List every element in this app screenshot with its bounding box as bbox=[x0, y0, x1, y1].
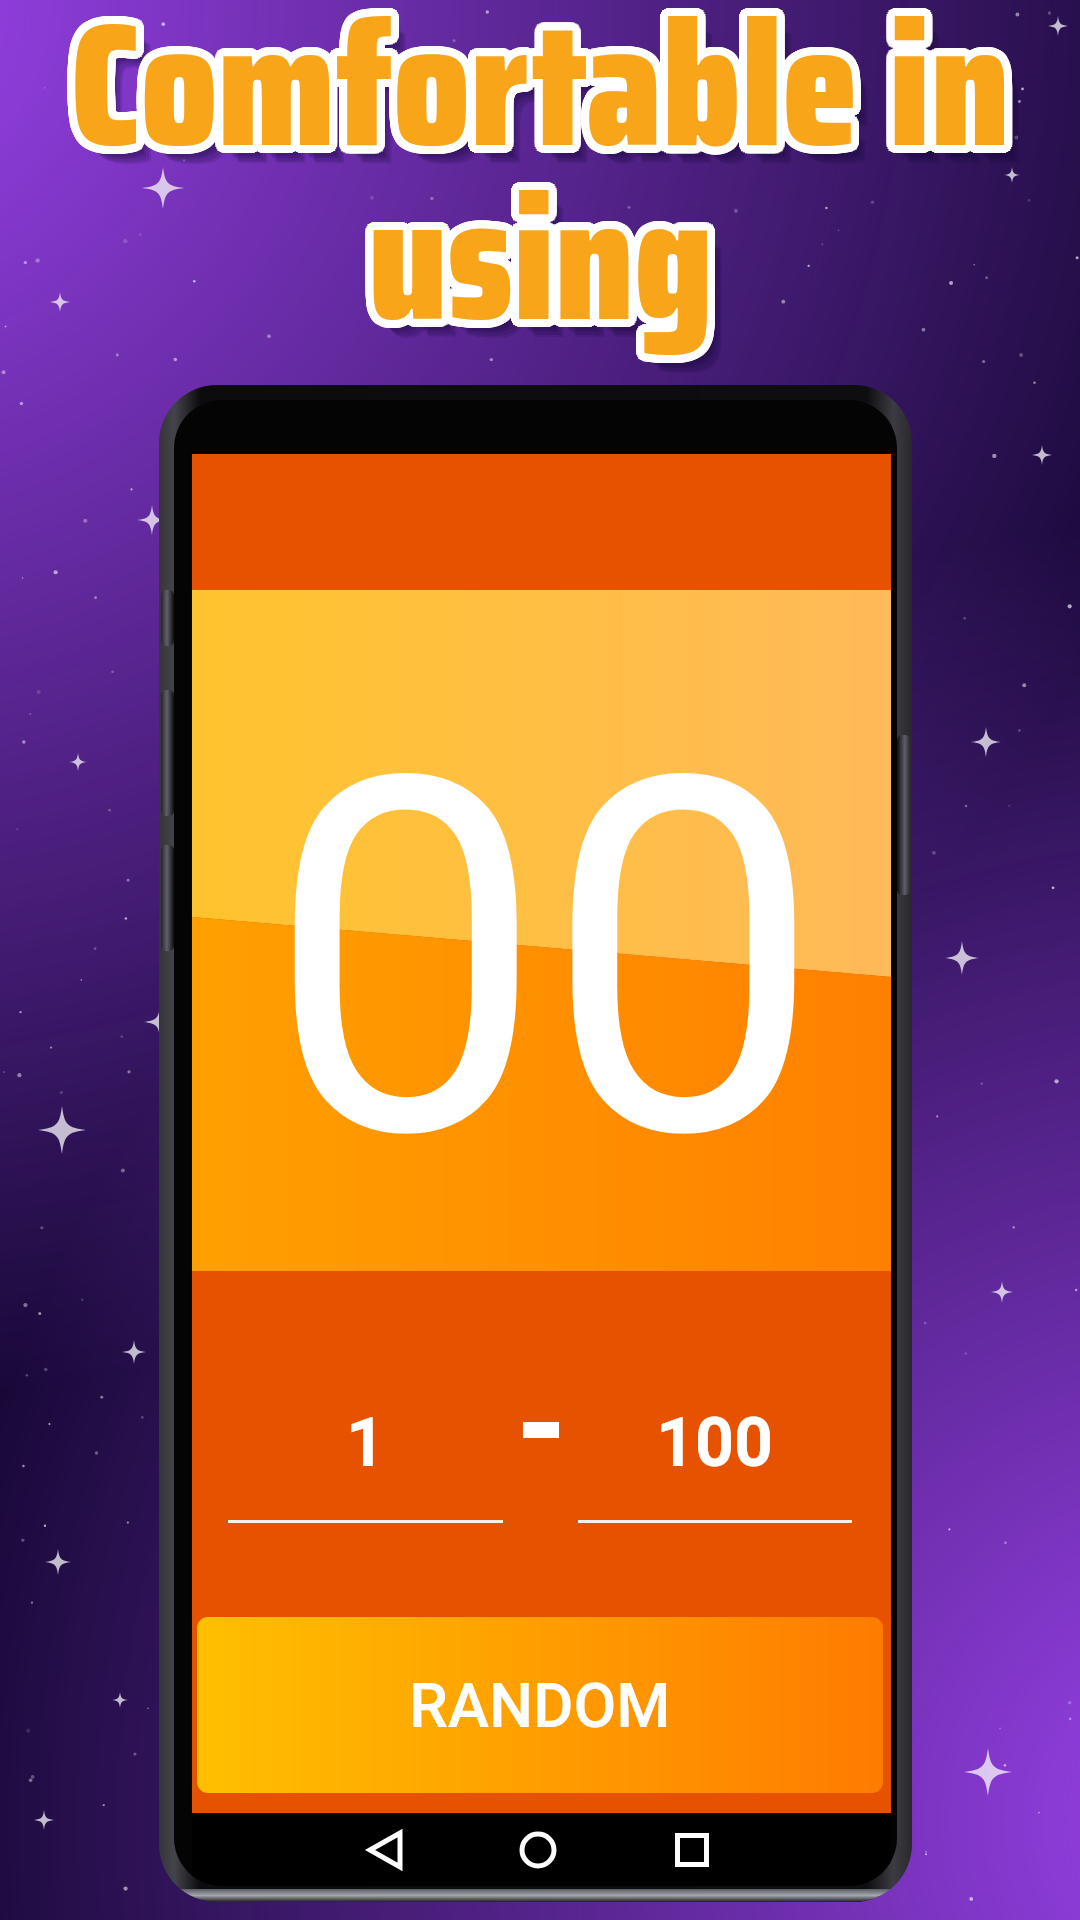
staticText: using bbox=[361, 126, 706, 400]
staticText: 00 bbox=[267, 671, 823, 1250]
staticText: Comfortable in bbox=[72, 0, 1012, 214]
staticText: using bbox=[383, 140, 728, 414]
staticText: Comfortable in bbox=[63, 0, 1003, 226]
staticText: RANDOM bbox=[409, 1669, 671, 1742]
staticText: Comfortable in bbox=[64, 0, 1004, 228]
staticText: using bbox=[368, 122, 713, 396]
staticText: using bbox=[370, 130, 715, 404]
staticText: using bbox=[362, 128, 707, 402]
staticText: using bbox=[361, 118, 706, 392]
staticText: using bbox=[374, 116, 719, 390]
staticText: Comfortable in bbox=[63, 0, 1003, 218]
button[interactable]: Home bbox=[513, 1813, 563, 1886]
staticText: Comfortable in bbox=[70, 0, 1010, 230]
staticText: Comfortable in bbox=[78, 0, 1018, 224]
staticText: using bbox=[372, 115, 717, 389]
staticText: using bbox=[378, 135, 723, 409]
staticText: using bbox=[375, 118, 720, 392]
staticText: Comfortable in bbox=[78, 0, 1018, 233]
staticText: Comfortable in bbox=[64, 0, 1004, 216]
staticText: using bbox=[364, 115, 709, 389]
staticText: Comfortable in bbox=[85, 0, 1025, 240]
staticText: Comfortable in bbox=[77, 0, 1017, 218]
staticText: using bbox=[376, 124, 721, 398]
staticText: using bbox=[368, 114, 713, 388]
staticText: Comfortable in bbox=[66, 0, 1006, 229]
staticText: Comfortable in bbox=[62, 0, 1002, 222]
staticText: Comfortable in bbox=[78, 0, 1018, 222]
staticText: using bbox=[376, 133, 721, 407]
staticText: Comfortable in bbox=[83, 0, 1023, 238]
staticText: using bbox=[381, 138, 726, 412]
staticText: Comfortable in bbox=[76, 0, 1016, 228]
staticText: using bbox=[370, 114, 715, 388]
staticText: Comfortable in bbox=[70, 0, 1010, 222]
button[interactable]: 100 bbox=[578, 1395, 852, 1483]
staticText: Comfortable in bbox=[76, 0, 1016, 230]
staticText: Comfortable in bbox=[80, 0, 1020, 235]
staticText: 1 bbox=[346, 1403, 386, 1483]
staticText: using bbox=[362, 116, 707, 390]
button[interactable]: 1 bbox=[192, 1395, 503, 1483]
button[interactable]: Recent apps bbox=[667, 1813, 717, 1886]
staticText: Comfortable in bbox=[74, 0, 1014, 229]
staticText: Comfortable in bbox=[62, 0, 1002, 224]
staticText: using bbox=[368, 130, 713, 404]
staticText: 100 bbox=[656, 1403, 774, 1483]
staticText: Comfortable in bbox=[76, 0, 1016, 216]
staticText: using bbox=[360, 120, 705, 394]
staticText: using bbox=[375, 126, 720, 400]
staticText: Comfortable in bbox=[68, 0, 1008, 230]
staticText: using bbox=[360, 124, 705, 398]
staticText: Comfortable in bbox=[66, 0, 1006, 215]
staticText: using bbox=[374, 130, 719, 404]
staticText: using bbox=[360, 122, 705, 396]
staticText: Comfortable in bbox=[78, 0, 1018, 220]
staticText: Comfortable in bbox=[70, 0, 1010, 214]
button[interactable]: Back bbox=[360, 1813, 410, 1886]
button[interactable]: RANDOM bbox=[197, 1617, 883, 1793]
staticText: using bbox=[374, 128, 719, 402]
staticText: Comfortable in bbox=[68, 0, 1008, 214]
staticText: using bbox=[376, 122, 721, 396]
staticText: using bbox=[376, 120, 721, 394]
staticText: using bbox=[366, 130, 711, 404]
staticText: Comfortable in bbox=[72, 0, 1012, 230]
staticText: Comfortable in bbox=[77, 0, 1017, 226]
staticText: using bbox=[364, 129, 709, 403]
staticText: Comfortable in bbox=[62, 0, 1002, 220]
staticText: using bbox=[372, 129, 717, 403]
staticText: Comfortable in bbox=[74, 0, 1014, 215]
staticText: using bbox=[366, 114, 711, 388]
